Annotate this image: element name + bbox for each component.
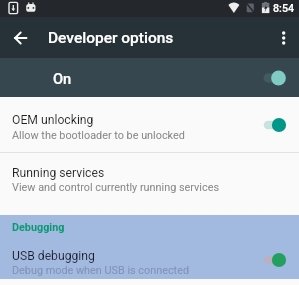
button[interactable]: Back bbox=[3, 20, 39, 56]
button[interactable]: Developer options master switch bbox=[255, 61, 299, 95]
button[interactable]: On bbox=[0, 58, 299, 97]
button[interactable]: OEM unlocking bbox=[0, 97, 299, 152]
button[interactable]: USB debugging bbox=[0, 241, 299, 279]
button[interactable]: More options bbox=[265, 21, 299, 55]
button[interactable]: OEM unlocking toggle bbox=[255, 108, 299, 142]
staticText: 8:54 bbox=[273, 2, 295, 15]
staticText: Debugging bbox=[12, 221, 65, 234]
staticText: USB debugging bbox=[12, 249, 95, 263]
staticText: Debug mode when USB is connected bbox=[12, 264, 190, 277]
button[interactable]: Running services bbox=[0, 153, 299, 215]
staticText: View and control currently running servi… bbox=[12, 181, 220, 194]
staticText: Developer options bbox=[48, 29, 174, 47]
staticText: Allow the bootloader to be unlocked bbox=[12, 129, 185, 142]
staticText: OEM unlocking bbox=[12, 113, 94, 127]
staticText: On bbox=[53, 70, 72, 87]
staticText: Running services bbox=[12, 166, 105, 180]
button[interactable]: USB debugging toggle bbox=[255, 243, 299, 277]
